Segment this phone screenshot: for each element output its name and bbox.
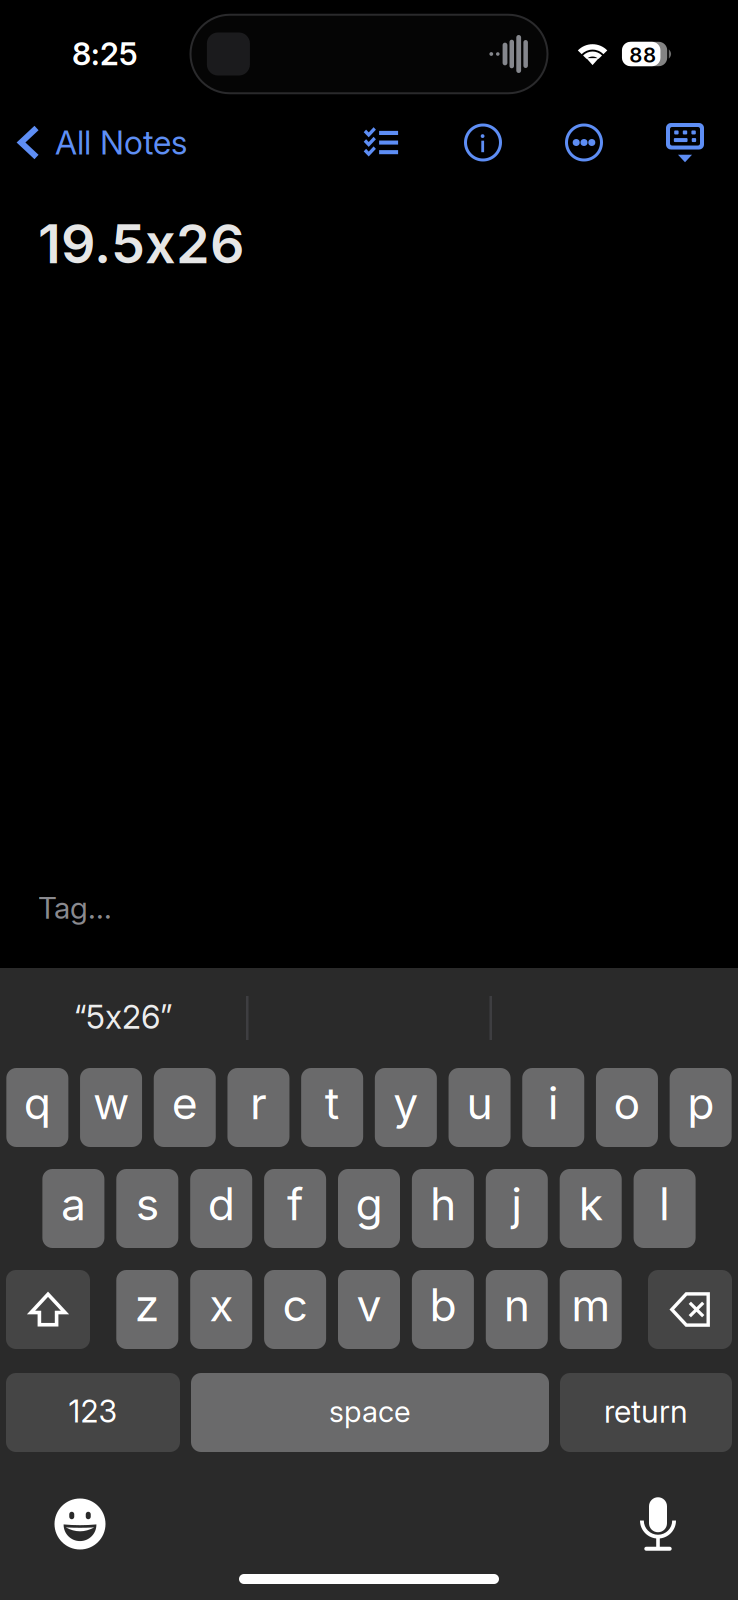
button[interactable]: f	[264, 1169, 326, 1248]
button[interactable]: w	[80, 1068, 142, 1147]
button[interactable]: x	[190, 1270, 252, 1349]
staticText: c	[283, 1278, 308, 1332]
staticText: y	[393, 1076, 418, 1130]
button[interactable]: i	[522, 1068, 584, 1147]
button[interactable]: All Notes	[0, 108, 199, 177]
staticText: n	[504, 1278, 530, 1332]
staticText: s	[136, 1177, 159, 1231]
staticText: d	[208, 1177, 235, 1231]
button[interactable]: z	[116, 1270, 178, 1349]
staticText: All Notes	[55, 122, 187, 162]
button[interactable]: j	[486, 1169, 548, 1248]
staticText: r	[250, 1076, 267, 1130]
button[interactable]: o	[596, 1068, 658, 1147]
button[interactable]: Emoji	[54, 1498, 106, 1550]
button[interactable]: More	[554, 112, 614, 172]
staticText: z	[135, 1278, 160, 1332]
button[interactable]: e	[154, 1068, 216, 1147]
button[interactable]: q	[6, 1068, 68, 1147]
button[interactable]: m	[560, 1270, 622, 1349]
staticText: 88	[629, 43, 656, 67]
staticText: a	[61, 1177, 86, 1231]
staticText: q	[24, 1076, 51, 1130]
button[interactable]: g	[338, 1169, 400, 1248]
button[interactable]: Delete	[648, 1270, 732, 1349]
staticText: 8:25	[72, 35, 138, 73]
staticText: b	[429, 1278, 456, 1332]
button[interactable]: v	[338, 1270, 400, 1349]
staticText: u	[467, 1076, 493, 1130]
button[interactable]: Shift	[6, 1270, 90, 1349]
button[interactable]: b	[412, 1270, 474, 1349]
staticText: w	[93, 1076, 129, 1130]
button[interactable]: r	[227, 1068, 289, 1147]
staticText: f	[287, 1177, 303, 1231]
button[interactable]: u	[449, 1068, 511, 1147]
button[interactable]: space	[191, 1373, 549, 1452]
staticText: j	[511, 1177, 522, 1231]
staticText: h	[430, 1177, 456, 1231]
staticText: 19.5x26	[38, 211, 245, 276]
button[interactable]: c	[264, 1270, 326, 1349]
button[interactable]: a	[42, 1169, 104, 1248]
staticText: 123	[68, 1393, 117, 1430]
button[interactable]: k	[560, 1169, 622, 1248]
staticText: o	[613, 1076, 640, 1130]
button[interactable]: d	[190, 1169, 252, 1248]
button[interactable]: h	[412, 1169, 474, 1248]
button[interactable]: t	[301, 1068, 363, 1147]
button[interactable]: n	[486, 1270, 548, 1349]
staticText: i	[548, 1076, 559, 1130]
button[interactable]: y	[375, 1068, 437, 1147]
staticText: m	[571, 1278, 610, 1332]
staticText: return	[604, 1393, 688, 1430]
button[interactable]: p	[670, 1068, 732, 1147]
staticText: t	[325, 1076, 340, 1130]
staticText: v	[356, 1278, 381, 1332]
staticText: “5x26”	[74, 997, 172, 1037]
staticText: g	[355, 1177, 382, 1231]
button[interactable]: l	[634, 1169, 696, 1248]
button[interactable]: 123	[6, 1373, 180, 1452]
button[interactable]: Hide Keyboard	[655, 112, 715, 172]
staticText: p	[687, 1076, 714, 1130]
button[interactable]: Dictation	[640, 1497, 676, 1551]
staticText: e	[172, 1076, 198, 1130]
staticText: space	[329, 1394, 411, 1429]
staticText: Tag...	[38, 890, 112, 926]
button[interactable]: Info	[453, 112, 513, 172]
staticText: x	[209, 1278, 233, 1332]
button[interactable]: s	[116, 1169, 178, 1248]
button[interactable]: return	[560, 1373, 732, 1452]
staticText: l	[659, 1177, 670, 1231]
staticText: k	[579, 1177, 603, 1231]
button[interactable]: Checklist	[351, 112, 411, 172]
